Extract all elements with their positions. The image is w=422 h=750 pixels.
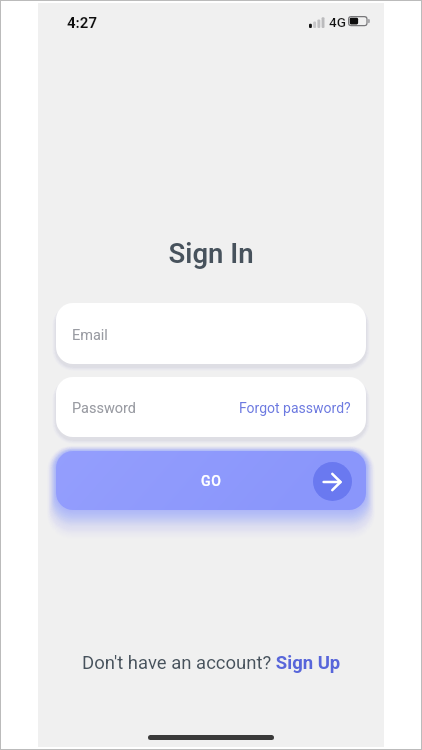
staticText: Sign In (38, 237, 384, 269)
button[interactable]: Don't have an account? Sign Up (82, 652, 341, 674)
staticText: 4G (329, 14, 346, 30)
button[interactable]: Go (313, 462, 352, 501)
staticText: 4:27 (67, 14, 98, 32)
staticText: GO (201, 473, 222, 489)
staticText: Password (72, 400, 137, 417)
button[interactable]: Email (56, 303, 366, 364)
button[interactable]: Forgot password? (239, 400, 351, 416)
staticText: Email (72, 327, 108, 344)
button[interactable]: GO (56, 451, 366, 510)
button[interactable]: Password (56, 377, 366, 437)
